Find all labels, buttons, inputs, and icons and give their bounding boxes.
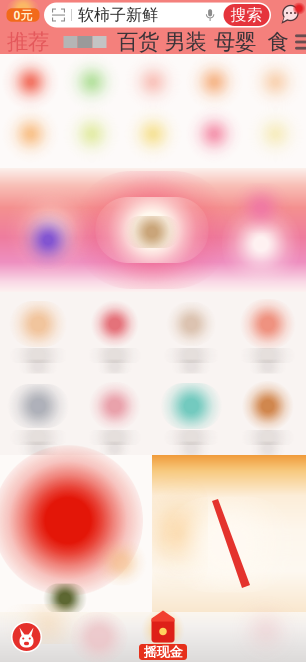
button[interactable]: 商品图 <box>0 455 152 612</box>
button[interactable]: 商品 <box>0 298 76 372</box>
button[interactable]: 商品 <box>153 380 229 454</box>
button[interactable]: 活动 <box>76 168 228 292</box>
button[interactable]: 全部频道 <box>295 31 306 53</box>
button[interactable]: 推荐 <box>0 31 56 53</box>
button[interactable]: 食 <box>261 31 295 53</box>
button[interactable]: 软柿子新鲜 <box>44 2 271 27</box>
button[interactable]: 母婴 <box>209 31 261 53</box>
button[interactable]: 零元购 <box>4 2 42 28</box>
button[interactable]: 分类 <box>56 31 114 53</box>
button[interactable]: 频道 <box>245 105 306 171</box>
button[interactable]: 男装 <box>162 31 209 53</box>
staticText: 百货 <box>117 29 159 55</box>
button[interactable]: 商品 <box>229 380 306 454</box>
button[interactable]: 商品 <box>153 298 229 372</box>
button[interactable]: 商品 <box>229 298 306 372</box>
staticText: 摇现金 <box>143 644 182 660</box>
button[interactable]: 频道 <box>184 53 245 119</box>
staticText: 搜索 <box>230 5 262 25</box>
button[interactable]: 百货 <box>114 31 162 53</box>
button[interactable]: 频道 <box>61 53 122 119</box>
button[interactable]: 频道 <box>122 53 184 119</box>
button[interactable]: 频道 <box>61 105 122 171</box>
button[interactable]: 天猫 <box>10 620 43 653</box>
button[interactable]: 商品 <box>0 380 76 454</box>
button[interactable]: 商品 <box>76 380 153 454</box>
staticText: 食 <box>267 29 288 55</box>
button[interactable]: 摇现金 <box>137 612 189 662</box>
button[interactable]: 活动 <box>216 168 306 292</box>
button[interactable]: 频道 <box>0 105 61 171</box>
button[interactable]: 频道 <box>0 53 61 119</box>
staticText: 0元 <box>13 7 32 23</box>
button[interactable]: 频道 <box>122 105 184 171</box>
button[interactable]: 商品图 <box>152 455 306 612</box>
staticText: 男装 <box>164 29 206 55</box>
button[interactable]: 商品 <box>76 298 153 372</box>
button[interactable]: 频道 <box>184 105 245 171</box>
staticText: 推荐 <box>7 29 49 55</box>
button[interactable]: 频道 <box>245 53 306 119</box>
staticText: 母婴 <box>214 29 256 55</box>
button[interactable]: 消息 <box>280 4 303 26</box>
button[interactable]: 活动 <box>0 168 102 292</box>
button[interactable]: 商品 <box>73 614 125 660</box>
staticText: 软柿子新鲜 <box>78 5 158 25</box>
